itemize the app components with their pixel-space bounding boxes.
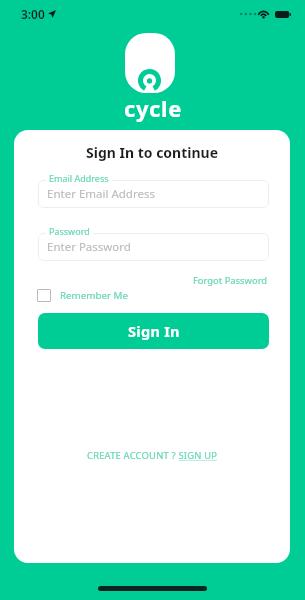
button[interactable]: Forgot Password bbox=[191, 272, 270, 289]
button[interactable]: Enter Password bbox=[38, 233, 269, 261]
staticText: Forgot Password bbox=[193, 274, 268, 287]
staticText: cycle bbox=[124, 93, 182, 123]
button[interactable]: Sign In bbox=[38, 313, 269, 349]
staticText: 3:00 bbox=[21, 6, 45, 22]
button[interactable]: Remember Me bbox=[36, 287, 130, 304]
staticText: Sign In to continue bbox=[86, 143, 219, 162]
staticText: Sign In bbox=[128, 321, 180, 341]
staticText: Remember Me bbox=[60, 289, 129, 302]
staticText: Email Address bbox=[49, 172, 109, 184]
staticText: Enter Password bbox=[47, 239, 131, 255]
staticText: CREATE ACCOUNT ? SIGN UP bbox=[87, 449, 218, 462]
button[interactable]: Enter Email Address bbox=[38, 180, 269, 208]
button[interactable]: CREATE ACCOUNT ? SIGN UP bbox=[85, 447, 220, 464]
staticText: Password bbox=[49, 225, 90, 237]
staticText: Enter Email Address bbox=[47, 186, 155, 202]
